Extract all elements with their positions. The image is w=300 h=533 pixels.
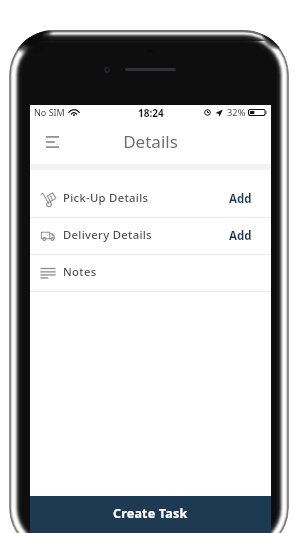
button[interactable]: Pick-Up Details: [30, 181, 271, 217]
button[interactable]: Notes: [30, 255, 271, 291]
button[interactable]: Delivery Details: [30, 218, 271, 254]
staticText: Add: [229, 228, 252, 244]
staticText: Delivery Details: [63, 227, 152, 242]
button[interactable]: Create Task: [30, 496, 271, 533]
staticText: Add: [229, 191, 252, 207]
staticText: No SIM: [34, 106, 65, 118]
staticText: Notes: [63, 264, 97, 279]
staticText: Pick-Up Details: [63, 190, 149, 205]
staticText: Details: [123, 130, 178, 153]
staticText: 32%: [227, 106, 246, 119]
staticText: 18:24: [138, 106, 164, 120]
staticText: Create Task: [113, 505, 188, 522]
button[interactable]: Open navigation menu: [39, 129, 65, 155]
